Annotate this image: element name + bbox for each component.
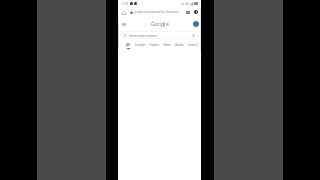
button[interactable]: News [160, 41, 173, 49]
button[interactable]: Search [186, 41, 199, 49]
button[interactable]: All [121, 41, 134, 49]
staticText: o [158, 20, 161, 27]
staticText: Videos [149, 43, 159, 47]
staticText: G [151, 20, 155, 27]
staticText: Search [188, 43, 198, 47]
staticText: e [166, 20, 169, 27]
button[interactable]: Images [134, 41, 147, 49]
button[interactable]: Account menu [193, 9, 199, 15]
button[interactable]: Videos [147, 41, 160, 49]
staticText: o [155, 20, 158, 27]
button[interactable]: Home [120, 9, 127, 16]
staticText: g [161, 20, 164, 27]
button[interactable]: china news report [124, 31, 195, 39]
button[interactable]: Books [173, 41, 186, 49]
button[interactable]: Menu [120, 20, 127, 27]
staticText: All [126, 43, 130, 47]
staticText: Images [135, 43, 146, 47]
button[interactable]: Tabs [185, 9, 191, 15]
staticText: 4G [185, 2, 189, 6]
staticText: l [164, 20, 166, 27]
staticText: 9:41 [122, 1, 129, 6]
staticText: china news report [129, 33, 157, 37]
staticText: Books [175, 43, 184, 47]
button[interactable]: Account [192, 20, 199, 27]
staticText: News [163, 43, 171, 47]
staticText: google.com/search?q=china+ne [134, 10, 179, 14]
button[interactable]: Voice search [192, 34, 195, 37]
button[interactable]: google.com/search?q=china+ne [130, 7, 184, 17]
